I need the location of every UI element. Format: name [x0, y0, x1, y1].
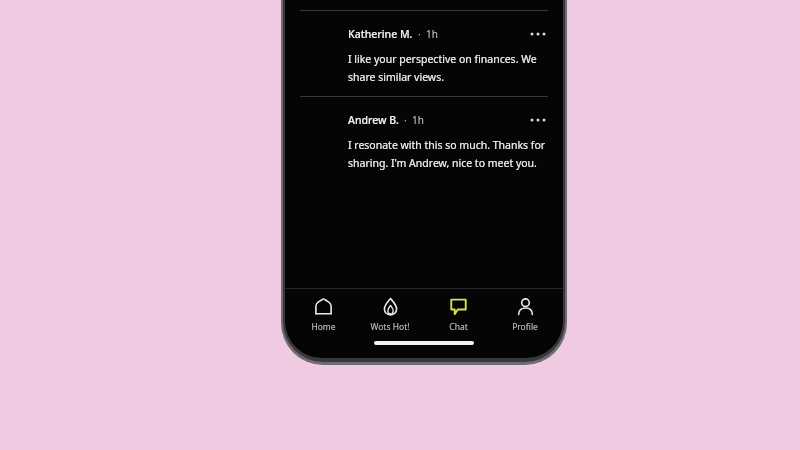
staticText: · [418, 27, 421, 41]
button[interactable]: Andrew B. [285, 97, 563, 182]
staticText: Andrew B. [348, 113, 399, 127]
staticText: 1h [426, 27, 438, 41]
button[interactable]: Katherine M. [285, 11, 563, 96]
staticText: Katherine M. [348, 27, 413, 41]
staticText: · [404, 113, 407, 127]
button[interactable]: More options [527, 23, 549, 45]
staticText: Profile [512, 321, 538, 333]
staticText: Wots Hot! [370, 321, 410, 333]
button[interactable]: Chat [428, 289, 488, 333]
staticText: I resonate with this so much. Thanks for [348, 138, 546, 152]
staticText: Home [311, 321, 336, 333]
staticText: Chat [449, 321, 468, 333]
staticText: share similar views. [348, 70, 444, 84]
staticText: sharing. I'm Andrew, nice to meet you. [348, 156, 537, 170]
staticText: I like your perspective on finances. We [348, 52, 537, 66]
button[interactable]: Home [293, 289, 353, 333]
button[interactable]: Wots Hot! [360, 289, 420, 333]
button[interactable]: More options [527, 109, 549, 131]
button[interactable]: Profile [495, 289, 555, 333]
staticText: 1h [412, 113, 424, 127]
